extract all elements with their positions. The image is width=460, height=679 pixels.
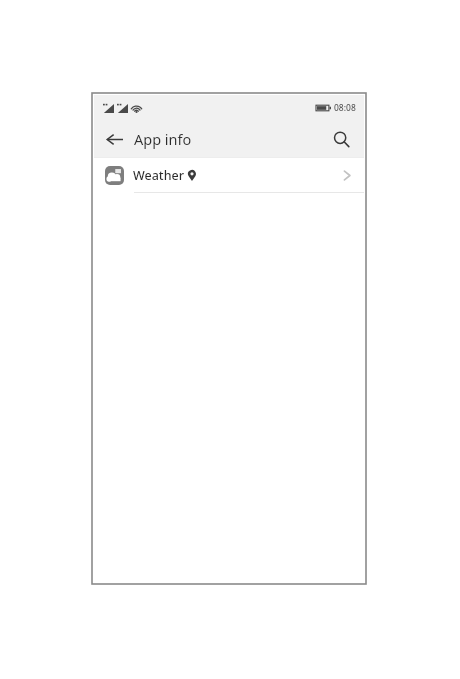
- button[interactable]: Search: [326, 124, 356, 154]
- button[interactable]: Weather: [94, 158, 364, 192]
- staticText: Weather: [133, 167, 184, 184]
- staticText: 08:08: [334, 102, 356, 114]
- button[interactable]: Back: [100, 125, 128, 153]
- staticText: App info: [134, 129, 192, 149]
